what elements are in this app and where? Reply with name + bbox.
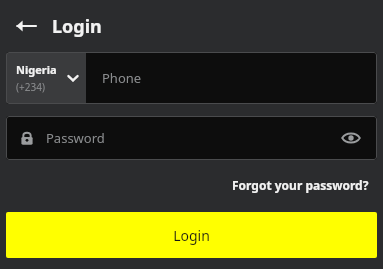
- staticText: Phone: [102, 69, 142, 87]
- button[interactable]: Phone: [86, 52, 377, 104]
- button[interactable]: Nigeria: [6, 53, 86, 103]
- staticText: Login: [173, 226, 210, 245]
- button[interactable]: Password: [6, 116, 377, 160]
- staticText: Login: [52, 14, 102, 39]
- button[interactable]: Forgot your password?: [228, 174, 373, 196]
- staticText: Nigeria: [16, 62, 57, 77]
- staticText: Forgot your password?: [232, 177, 369, 193]
- staticText: Password: [46, 129, 339, 147]
- staticText: (+234): [16, 80, 45, 94]
- button[interactable]: Login: [6, 212, 377, 258]
- button[interactable]: Show password: [339, 126, 363, 150]
- button[interactable]: Back: [8, 8, 44, 44]
